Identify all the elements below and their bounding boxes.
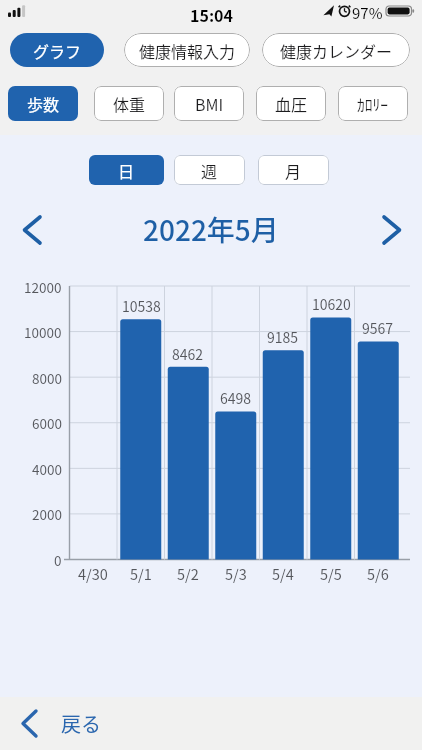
- staticText: 2022年5月: [143, 209, 279, 247]
- staticText: 10000: [24, 322, 62, 341]
- staticText: BMI: [195, 92, 224, 115]
- staticText: 健康情報入力: [139, 39, 236, 62]
- staticText: 4/30: [78, 563, 108, 583]
- staticText: グラフ: [33, 39, 82, 62]
- staticText: 15:04: [190, 3, 233, 26]
- staticText: 4000: [32, 459, 62, 478]
- staticText: 9567: [362, 318, 394, 338]
- staticText: 週: [201, 159, 218, 182]
- staticText: 0: [54, 550, 62, 569]
- button[interactable]: 血圧: [256, 86, 326, 121]
- button[interactable]: [0, 697, 422, 750]
- button[interactable]: 健康カレンダー: [262, 33, 410, 67]
- button[interactable]: BMI: [174, 86, 244, 121]
- button[interactable]: 月: [258, 155, 329, 185]
- staticText: ｶﾛﾘｰ: [357, 93, 389, 115]
- staticText: 月: [285, 159, 302, 182]
- staticText: 10620: [312, 294, 351, 314]
- staticText: 5/4: [272, 563, 294, 583]
- button[interactable]: グラフ: [10, 33, 104, 67]
- staticText: 12000: [24, 277, 62, 296]
- staticText: 5/2: [177, 563, 199, 583]
- staticText: 6000: [32, 413, 62, 432]
- staticText: 日: [118, 159, 135, 182]
- button[interactable]: ｶﾛﾘｰ: [338, 86, 408, 121]
- staticText: 10538: [122, 296, 161, 316]
- staticText: 血圧: [275, 92, 308, 115]
- staticText: 戻る: [61, 709, 101, 738]
- staticText: 97%: [352, 2, 383, 22]
- button[interactable]: 歩数: [8, 86, 78, 121]
- button[interactable]: 週: [174, 155, 245, 185]
- button[interactable]: [370, 208, 410, 252]
- staticText: 5/5: [320, 563, 342, 583]
- button[interactable]: 健康情報入力: [124, 33, 250, 67]
- staticText: 5/1: [130, 563, 152, 583]
- staticText: 2000: [32, 504, 62, 523]
- staticText: 6498: [220, 388, 252, 408]
- staticText: 9185: [267, 327, 299, 347]
- staticText: 健康カレンダー: [280, 39, 393, 62]
- staticText: 体重: [113, 92, 146, 115]
- button[interactable]: 体重: [94, 86, 164, 121]
- staticText: 5/6: [367, 563, 389, 583]
- staticText: 歩数: [27, 92, 60, 115]
- button[interactable]: [14, 208, 54, 252]
- staticText: 8462: [172, 344, 204, 364]
- staticText: 5/3: [225, 563, 247, 583]
- staticText: 8000: [32, 368, 62, 387]
- button[interactable]: 日: [89, 155, 164, 185]
